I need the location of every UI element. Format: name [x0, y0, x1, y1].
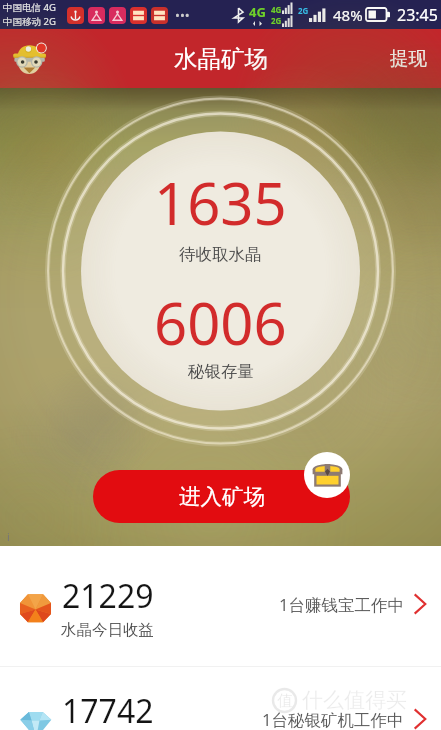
- staticText: 进入矿场: [179, 483, 265, 510]
- button[interactable]: 提现: [376, 35, 441, 82]
- staticText: 1台赚钱宝工作中: [279, 593, 404, 616]
- staticText: 1635: [154, 163, 287, 242]
- button[interactable]: Treasure chest: [304, 452, 350, 498]
- staticText: 2G: [271, 15, 282, 26]
- staticText: 21229: [62, 574, 154, 618]
- staticText: 水晶矿场: [174, 44, 268, 74]
- staticText: 48%: [333, 5, 363, 25]
- staticText: •••: [175, 6, 190, 24]
- staticText: 1台秘银矿机工作中: [262, 708, 404, 730]
- staticText: 中国移动 2G: [3, 15, 56, 28]
- staticText: 4G: [271, 4, 282, 15]
- staticText: 2G: [298, 5, 309, 16]
- button[interactable]: 17742: [0, 661, 441, 730]
- staticText: 值: [277, 691, 293, 711]
- button[interactable]: 进入矿场: [93, 470, 350, 523]
- button[interactable]: 21229: [0, 546, 441, 666]
- staticText: 4G: [249, 3, 266, 21]
- staticText: 中国电信 4G: [3, 1, 56, 14]
- staticText: i: [7, 529, 10, 544]
- staticText: 秘银存量: [188, 361, 254, 382]
- staticText: 17742: [62, 689, 154, 730]
- staticText: 23:45: [397, 4, 438, 26]
- button[interactable]: Profile: [12, 39, 52, 79]
- staticText: 待收取水晶: [179, 244, 262, 265]
- staticText: 水晶今日收益: [61, 620, 154, 640]
- staticText: 6006: [154, 283, 287, 362]
- staticText: 提现: [390, 47, 427, 70]
- staticText: 什么值得买: [302, 687, 407, 713]
